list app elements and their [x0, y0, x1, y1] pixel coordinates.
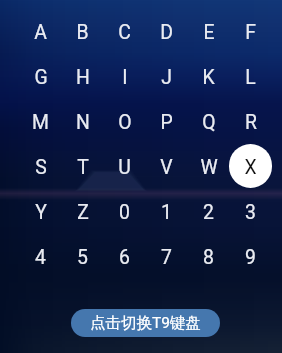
staticText: 5: [77, 246, 88, 269]
staticText: C: [118, 21, 131, 44]
staticText: 3: [245, 201, 256, 224]
staticText: 点击切换T9键盘: [90, 313, 201, 333]
staticText: G: [34, 66, 48, 89]
button[interactable]: 0: [103, 189, 146, 233]
button[interactable]: U: [103, 144, 146, 188]
staticText: J: [161, 66, 172, 89]
button[interactable]: 8: [187, 234, 230, 278]
button[interactable]: G: [19, 54, 62, 98]
staticText: W: [200, 156, 218, 179]
button[interactable]: V: [145, 144, 188, 188]
staticText: 4: [35, 246, 46, 269]
staticText: D: [160, 21, 173, 44]
staticText: U: [118, 156, 131, 179]
staticText: 7: [161, 246, 172, 269]
button[interactable]: W: [187, 144, 230, 188]
button[interactable]: E: [187, 9, 230, 53]
staticText: S: [35, 156, 47, 179]
button[interactable]: 5: [61, 234, 104, 278]
button[interactable]: B: [61, 9, 104, 53]
staticText: H: [76, 66, 90, 89]
button[interactable]: 2: [187, 189, 230, 233]
button[interactable]: C: [103, 9, 146, 53]
staticText: L: [245, 66, 256, 89]
button[interactable]: P: [145, 99, 188, 143]
button[interactable]: A: [19, 9, 62, 53]
button[interactable]: 4: [19, 234, 62, 278]
button[interactable]: X: [229, 144, 272, 188]
staticText: I: [122, 66, 128, 89]
button[interactable]: 3: [229, 189, 272, 233]
button[interactable]: Z: [61, 189, 104, 233]
staticText: 6: [119, 246, 130, 269]
staticText: 9: [245, 246, 256, 269]
staticText: X: [244, 156, 257, 179]
button[interactable]: Q: [187, 99, 230, 143]
staticText: 1: [161, 201, 172, 224]
button[interactable]: N: [61, 99, 104, 143]
staticText: 2: [203, 201, 214, 224]
button[interactable]: 1: [145, 189, 188, 233]
button[interactable]: 6: [103, 234, 146, 278]
staticText: R: [245, 111, 257, 134]
staticText: Y: [35, 201, 47, 224]
staticText: F: [245, 21, 256, 44]
staticText: N: [76, 111, 90, 134]
button[interactable]: F: [229, 9, 272, 53]
button[interactable]: K: [187, 54, 230, 98]
button[interactable]: T: [61, 144, 104, 188]
button[interactable]: H: [61, 54, 104, 98]
button[interactable]: O: [103, 99, 146, 143]
staticText: E: [203, 21, 215, 44]
staticText: K: [202, 66, 215, 89]
button[interactable]: D: [145, 9, 188, 53]
staticText: 8: [203, 246, 214, 269]
button[interactable]: S: [19, 144, 62, 188]
button[interactable]: L: [229, 54, 272, 98]
staticText: P: [160, 111, 173, 134]
staticText: T: [77, 156, 89, 179]
staticText: A: [34, 21, 47, 44]
button[interactable]: Y: [19, 189, 62, 233]
button[interactable]: R: [229, 99, 272, 143]
staticText: Z: [77, 201, 89, 224]
button[interactable]: 点击切换T9键盘: [71, 309, 220, 337]
button[interactable]: M: [19, 99, 62, 143]
button[interactable]: 9: [229, 234, 272, 278]
button[interactable]: 7: [145, 234, 188, 278]
button[interactable]: J: [145, 54, 188, 98]
staticText: V: [160, 156, 173, 179]
staticText: B: [76, 21, 89, 44]
staticText: M: [32, 111, 49, 134]
staticText: Q: [202, 111, 216, 134]
staticText: O: [118, 111, 132, 134]
staticText: 0: [119, 201, 130, 224]
button[interactable]: I: [103, 54, 146, 98]
